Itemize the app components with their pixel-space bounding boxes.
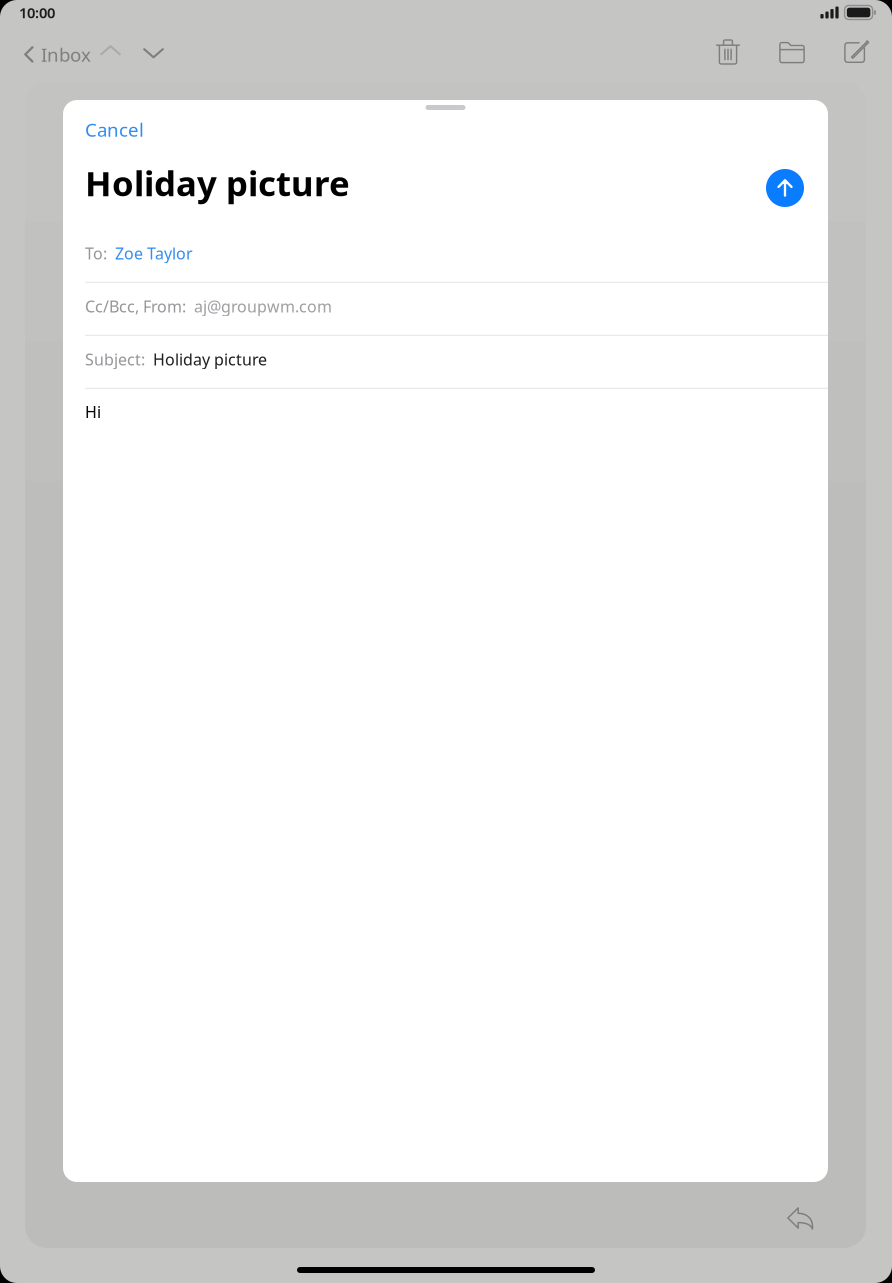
- staticText: Subject:: [85, 349, 145, 370]
- button[interactable]: Next message: [135, 40, 172, 66]
- staticText: Cancel: [85, 117, 144, 142]
- staticText: To:: [85, 243, 107, 264]
- staticText: Cc/Bcc, From:: [85, 296, 186, 317]
- button[interactable]: Previous message: [92, 37, 129, 63]
- button[interactable]: Inbox: [24, 36, 97, 73]
- staticText: 10:00: [19, 3, 55, 22]
- button[interactable]: Reply: [778, 1198, 823, 1238]
- staticText: aj@groupwm.com: [194, 296, 332, 317]
- staticText: Holiday picture: [85, 160, 350, 206]
- staticText: Inbox: [41, 42, 91, 67]
- button[interactable]: Move to folder: [770, 33, 814, 72]
- staticText: Holiday picture: [153, 349, 267, 370]
- staticText: Hi: [85, 401, 101, 422]
- button[interactable]: Delete: [707, 30, 749, 74]
- button[interactable]: Send: [766, 169, 804, 207]
- button[interactable]: Cancel: [85, 113, 150, 146]
- staticText: Zoe Taylor: [115, 243, 193, 264]
- button[interactable]: New message: [835, 31, 878, 72]
